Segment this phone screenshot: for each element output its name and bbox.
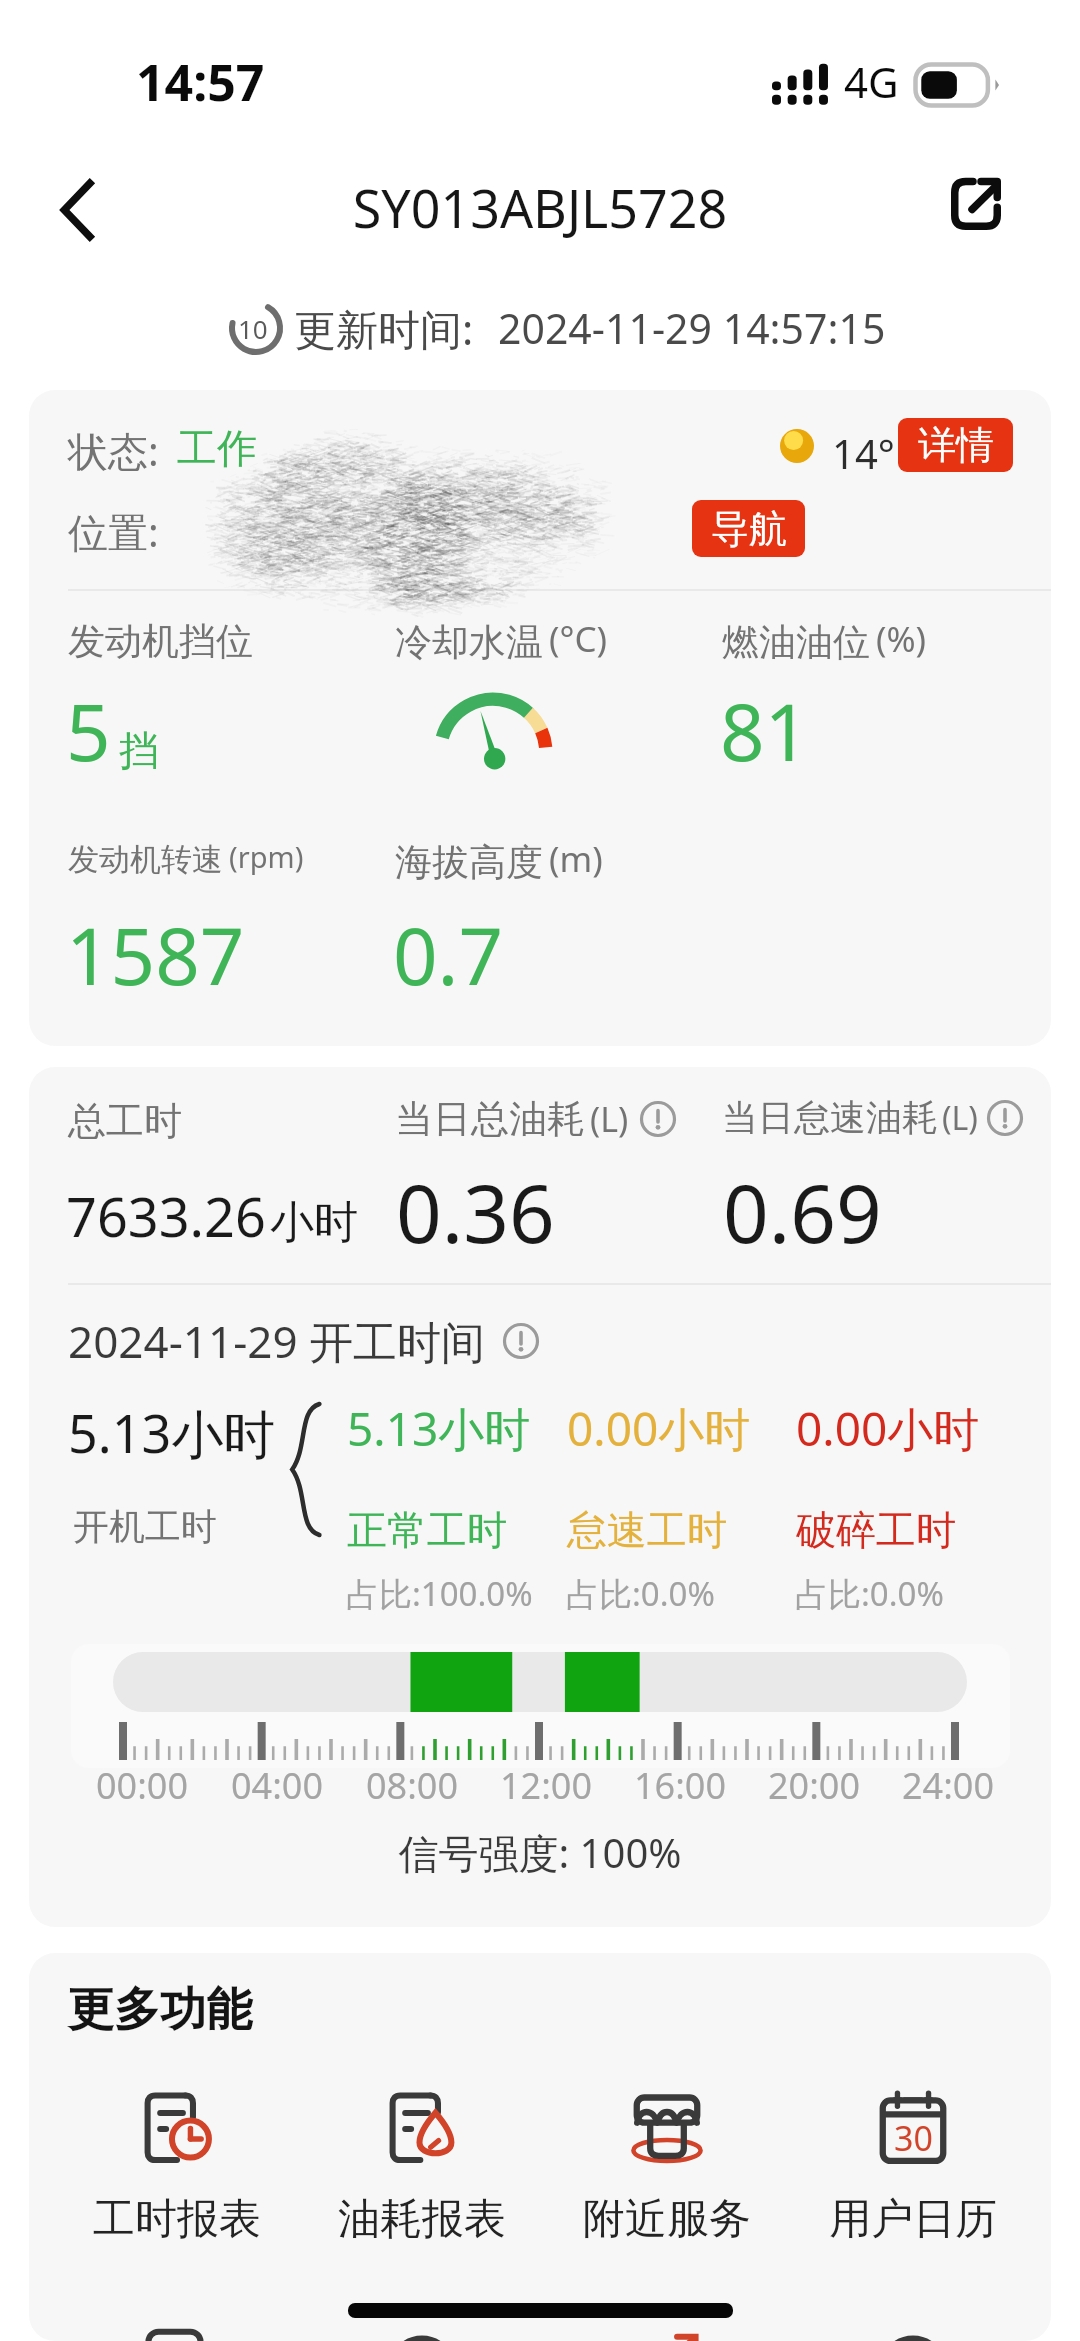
staticText: 破碎工时 <box>796 1505 956 1555</box>
staticText: 开机工时 <box>73 1504 217 1549</box>
staticText: 2024-11-29 14:57:15 <box>498 300 886 356</box>
staticText: 挡 <box>119 725 159 775</box>
staticText: 5 <box>66 678 111 784</box>
staticText: 用户日历 <box>829 2193 997 2246</box>
staticText: 12:00 <box>500 1761 593 1810</box>
staticText: 16:00 <box>634 1761 727 1810</box>
staticText: 油耗报表 <box>338 2193 506 2246</box>
staticText: 00:00 <box>96 1761 189 1810</box>
button[interactable]: Share <box>928 155 1024 251</box>
staticText: 工作 <box>177 423 257 473</box>
staticText: 0.00小时 <box>796 1397 980 1460</box>
staticText: (rpm) <box>229 837 304 876</box>
staticText: 位置: <box>68 504 159 559</box>
staticText: (°C) <box>549 615 608 663</box>
staticText: 正常工时 <box>347 1505 507 1555</box>
staticText: 状态: <box>68 423 159 478</box>
staticText: 5.13小时 <box>68 1397 276 1468</box>
staticText: 14° <box>832 426 895 480</box>
staticText: 占比:0.0% <box>795 1571 944 1616</box>
staticText: 小时 <box>270 1195 358 1250</box>
staticText: 24:00 <box>902 1761 995 1810</box>
staticText: 0.7 <box>393 902 504 1008</box>
staticText: 冷却水温 <box>395 619 543 666</box>
button[interactable]: 油耗报表 <box>299 2087 544 2246</box>
staticText: 04:00 <box>231 1761 324 1810</box>
staticText: 工时报表 <box>93 2193 261 2246</box>
staticText: 81 <box>720 678 810 784</box>
staticText: 10 <box>238 311 268 346</box>
button[interactable]: 附近服务 <box>544 2087 790 2246</box>
staticText: 发动机转速 <box>68 840 223 879</box>
staticText: 4G <box>844 53 899 110</box>
staticText: (L) <box>590 1096 629 1142</box>
staticText: 30 <box>894 2115 933 2161</box>
staticText: 2024-11-29 开工时间 <box>68 1311 486 1371</box>
button[interactable]: 详情 <box>898 418 1013 472</box>
staticText: 信号强度: 100% <box>29 1825 1051 1880</box>
staticText: 当日总油耗 <box>395 1095 585 1143</box>
staticText: 附近服务 <box>583 2193 751 2246</box>
button[interactable]: Function <box>790 2320 1036 2341</box>
staticText: 发动机挡位 <box>68 618 253 665</box>
staticText: 更多功能 <box>68 1981 252 2039</box>
button[interactable]: Function <box>54 2320 299 2341</box>
staticText: 1587 <box>66 902 245 1008</box>
staticText: (m) <box>549 835 603 883</box>
button[interactable]: Function <box>299 2320 544 2341</box>
staticText: 20:00 <box>768 1761 861 1810</box>
button[interactable]: 工时报表 <box>54 2087 299 2246</box>
staticText: 怠速工时 <box>567 1505 727 1555</box>
staticText: 08:00 <box>366 1761 459 1810</box>
staticText: 7633.26 <box>66 1179 266 1253</box>
button[interactable]: Back <box>30 162 126 258</box>
staticText: 总工时 <box>68 1097 182 1145</box>
staticText: 海拔高度 <box>395 839 543 886</box>
staticText: (%) <box>876 615 927 663</box>
staticText: 占比:100.0% <box>346 1571 533 1616</box>
staticText: 详情 <box>918 421 994 469</box>
staticText: 燃油油位 <box>722 619 870 666</box>
staticText: 0.69 <box>723 1157 882 1266</box>
staticText: (L) <box>942 1096 978 1140</box>
button[interactable]: 导航 <box>692 500 805 557</box>
button[interactable]: 用户日历 <box>790 2087 1036 2246</box>
staticText: 更新时间: <box>294 300 474 357</box>
staticText: 占比:0.0% <box>566 1571 715 1616</box>
staticText: 5.13小时 <box>347 1397 531 1460</box>
staticText: 导航 <box>711 505 787 553</box>
staticText: 14:57 <box>136 48 265 116</box>
staticText: 当日怠速油耗 <box>722 1095 938 1140</box>
staticText: SY013ABJL5728 <box>0 172 1080 243</box>
staticText: 0.00小时 <box>567 1397 751 1460</box>
staticText: 0.36 <box>396 1157 555 1266</box>
button[interactable]: Function <box>544 2320 790 2341</box>
